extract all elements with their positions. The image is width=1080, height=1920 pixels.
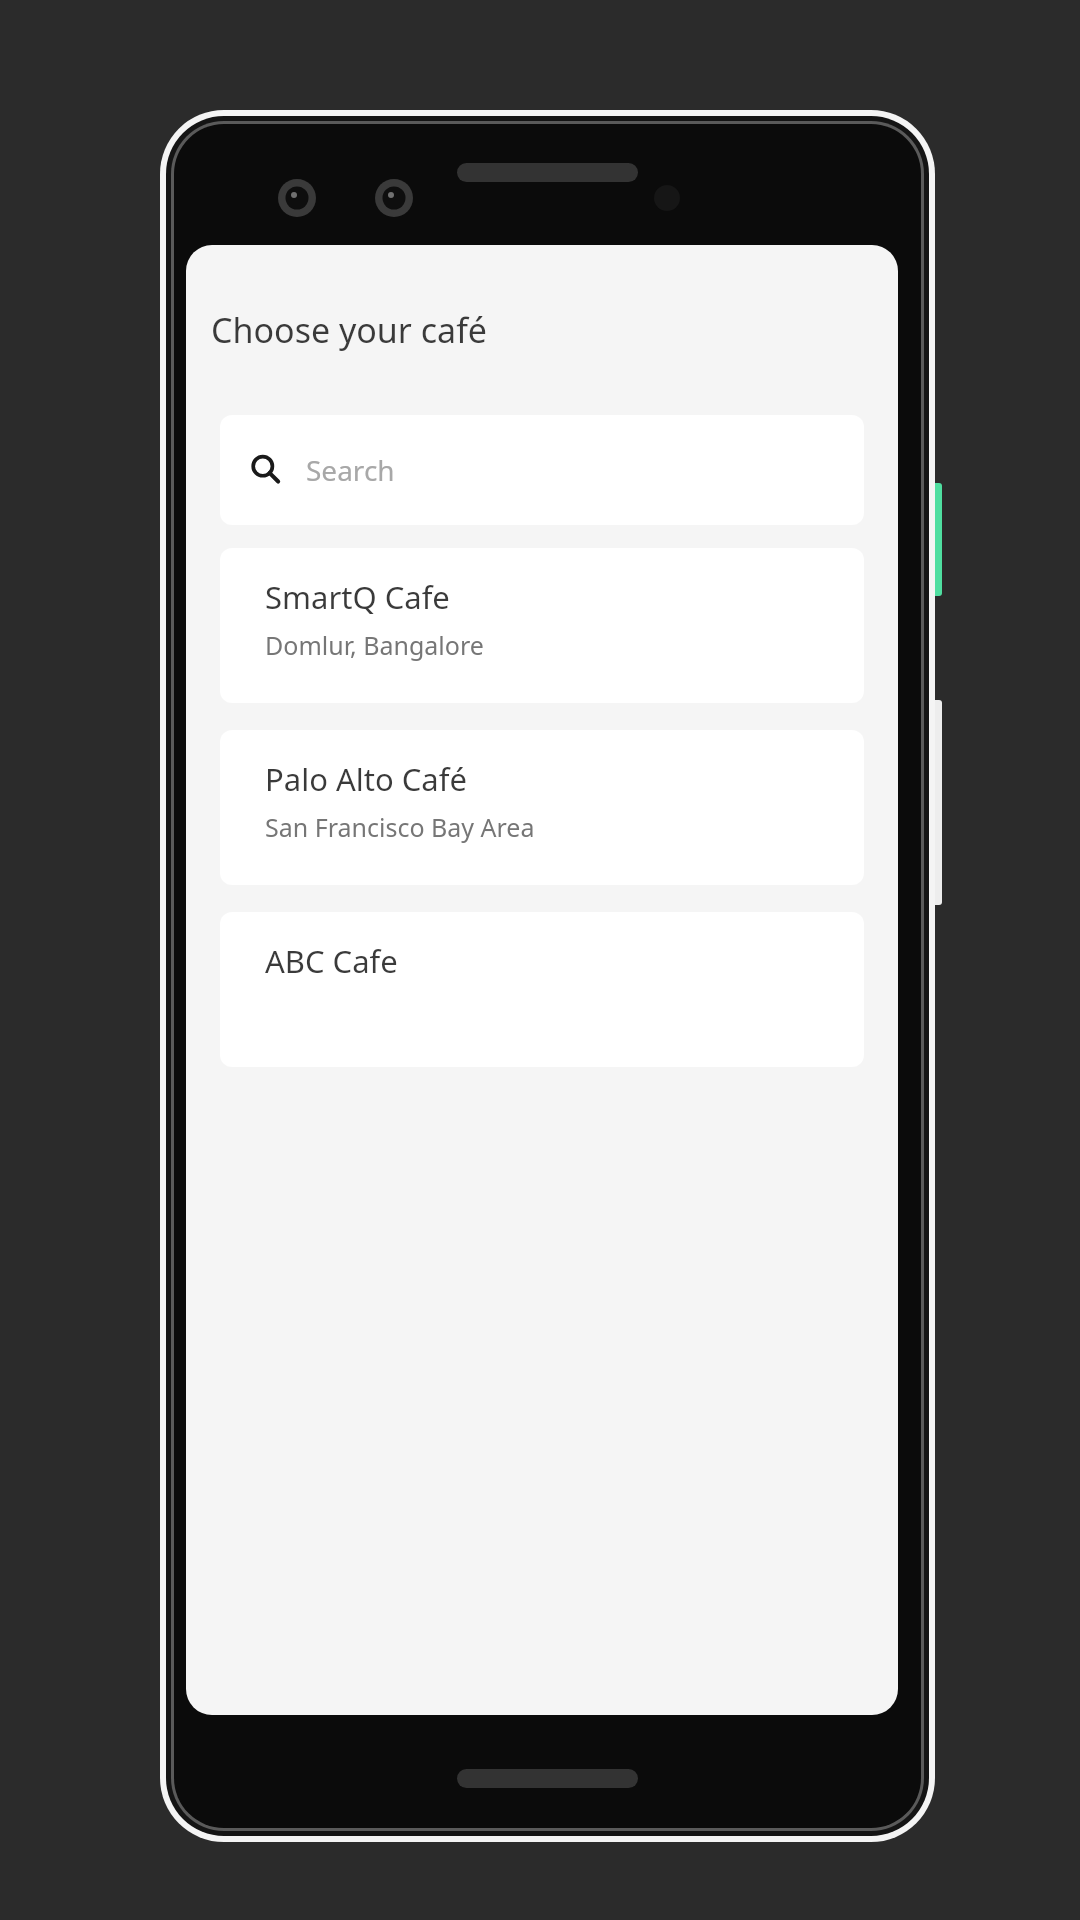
staticText: SmartQ Cafe bbox=[265, 576, 450, 618]
button[interactable]: Power bbox=[920, 483, 942, 596]
button[interactable]: Palo Alto Café bbox=[220, 730, 864, 885]
staticText: San Francisco Bay Area bbox=[265, 810, 535, 844]
button[interactable]: Volume bbox=[920, 700, 942, 905]
staticText: Palo Alto Café bbox=[265, 758, 467, 800]
staticText: Search bbox=[306, 451, 395, 489]
button[interactable]: ABC Cafe bbox=[220, 912, 864, 1067]
other: Search bbox=[250, 454, 282, 486]
button[interactable]: Search bbox=[220, 415, 864, 525]
button[interactable]: SmartQ Cafe bbox=[220, 548, 864, 703]
staticText: Domlur, Bangalore bbox=[265, 628, 484, 662]
staticText: Choose your café bbox=[211, 307, 488, 353]
staticText: ABC Cafe bbox=[265, 940, 398, 982]
